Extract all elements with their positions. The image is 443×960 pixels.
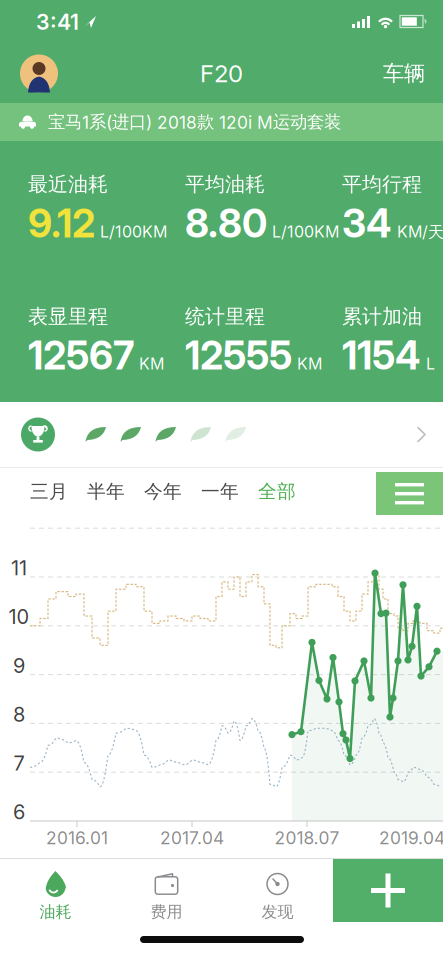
button[interactable]: 宝马1系(进口) 2018款 120i M运动套装: [0, 103, 443, 141]
staticText: KM/天: [397, 222, 443, 242]
staticText: 费用: [150, 902, 182, 922]
staticText: 一年: [201, 480, 239, 503]
staticText: 半年: [87, 480, 125, 503]
staticText: 1154: [342, 333, 421, 378]
staticText: 34: [342, 201, 392, 246]
button[interactable]: 添加记录: [333, 859, 443, 922]
button[interactable]: 车辆: [383, 60, 425, 87]
button[interactable]: 图表选项: [376, 472, 443, 515]
staticText: 12555: [185, 333, 292, 378]
button[interactable]: 全部: [258, 480, 296, 503]
staticText: 11: [11, 556, 27, 580]
staticText: KM: [297, 354, 322, 373]
staticText: 表显里程: [28, 304, 108, 329]
staticText: 平均油耗: [185, 172, 265, 197]
button[interactable]: 油耗: [0, 859, 111, 922]
staticText: 2019.04: [379, 828, 443, 848]
staticText: 2017.04: [160, 828, 224, 848]
button[interactable]: Profile: [20, 54, 58, 92]
staticText: L: [426, 354, 435, 373]
staticText: 今年: [144, 480, 182, 503]
staticText: 宝马1系(进口) 2018款 120i M运动套装: [48, 111, 341, 133]
staticText: L/100KM: [100, 222, 167, 241]
staticText: L/100KM: [272, 222, 339, 241]
staticText: 累计加油: [342, 304, 422, 329]
staticText: 6: [13, 800, 25, 824]
staticText: 全部: [258, 480, 296, 503]
staticText: 油耗: [39, 902, 71, 922]
staticText: F20: [200, 59, 243, 88]
button[interactable]: 半年: [87, 480, 125, 503]
staticText: 8.80: [185, 201, 267, 246]
button[interactable]: 成就: [0, 402, 443, 468]
staticText: 最近油耗: [28, 172, 108, 197]
staticText: 统计里程: [185, 304, 265, 329]
staticText: 平均行程: [342, 172, 422, 197]
staticText: 3:41: [36, 9, 79, 35]
button[interactable]: 一年: [201, 480, 239, 503]
staticText: 10: [8, 605, 29, 629]
staticText: 8: [13, 703, 25, 726]
button[interactable]: 今年: [144, 480, 182, 503]
staticText: 2016.01: [46, 828, 108, 848]
staticText: 2018.07: [274, 828, 339, 848]
staticText: 9.12: [28, 201, 95, 246]
staticText: 12567: [28, 333, 134, 378]
staticText: 车辆: [383, 60, 425, 87]
staticText: 7: [13, 751, 24, 775]
staticText: KM: [139, 354, 164, 373]
staticText: 9: [13, 654, 25, 677]
button[interactable]: 三月: [30, 480, 68, 503]
staticText: 三月: [30, 480, 68, 503]
staticText: 发现: [261, 902, 293, 922]
button[interactable]: 费用: [111, 859, 222, 922]
button[interactable]: 发现: [222, 859, 333, 922]
